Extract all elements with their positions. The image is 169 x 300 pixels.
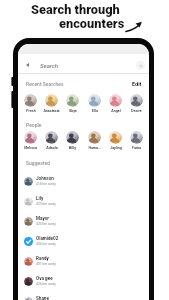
button[interactable]: Jayling (106, 131, 125, 150)
staticText: Shane (36, 296, 49, 300)
staticText: Mayor (36, 216, 50, 221)
staticText: 418 km away (36, 182, 56, 186)
button[interactable]: Fuma (127, 131, 146, 150)
button[interactable]: Johnson (18, 171, 149, 191)
staticText: Angel (111, 109, 121, 113)
staticText: Lily (36, 196, 44, 201)
staticText: Edit (132, 81, 142, 87)
staticText: Johnson (36, 176, 54, 181)
button[interactable]: Olamide02 (18, 231, 149, 251)
button[interactable]: Billy (63, 131, 82, 150)
button[interactable]: Skye (63, 94, 82, 113)
staticText: 426 km away (36, 282, 56, 286)
staticText: Recent Searches (26, 81, 64, 87)
button[interactable]: Ella (85, 94, 104, 113)
staticText: Adaola (46, 146, 58, 150)
staticText: 436 km away (36, 242, 56, 246)
staticText: Fuma (132, 146, 141, 150)
staticText: 429 km away (36, 202, 56, 206)
staticText: encounters (59, 16, 125, 31)
button[interactable]: Desire (127, 94, 146, 113)
staticText: Jayling (110, 146, 122, 150)
staticText: Billy (69, 146, 76, 150)
staticText: Melissa (24, 146, 37, 150)
staticText: Desire (131, 109, 142, 113)
button[interactable]: Mayor (18, 211, 149, 231)
button[interactable]: Melissa (21, 131, 40, 150)
staticText: Ova gee (36, 276, 53, 281)
button[interactable]: Angel (106, 94, 125, 113)
staticText: 420 km away (36, 222, 56, 226)
button[interactable]: Ova gee (18, 271, 149, 291)
button[interactable]: Edit (132, 81, 142, 87)
staticText: Skye (69, 109, 77, 113)
staticText: Ella (92, 109, 98, 113)
button[interactable]: Anastasia (42, 94, 61, 113)
staticText: 401 km away (36, 262, 56, 266)
staticText: Suggested (26, 160, 50, 166)
staticText: Olamide02 (36, 236, 59, 241)
staticText: People (26, 122, 42, 128)
button[interactable]: Shane (18, 291, 149, 300)
other: Back (26, 63, 29, 67)
button[interactable]: Randy (18, 251, 149, 271)
button[interactable]: Huma… (85, 131, 104, 150)
button[interactable]: Presh (21, 94, 40, 113)
button[interactable]: Voice search (136, 61, 145, 70)
staticText: Search (40, 62, 59, 69)
staticText: Presh (26, 109, 36, 113)
staticText: Search through (31, 2, 120, 17)
staticText: Randy (36, 256, 49, 261)
button[interactable]: Lily (18, 191, 149, 211)
button[interactable]: Adaola (42, 131, 61, 150)
staticText: Huma… (88, 146, 101, 150)
staticText: Anastasia (43, 109, 60, 113)
button[interactable]: Back (18, 57, 149, 73)
